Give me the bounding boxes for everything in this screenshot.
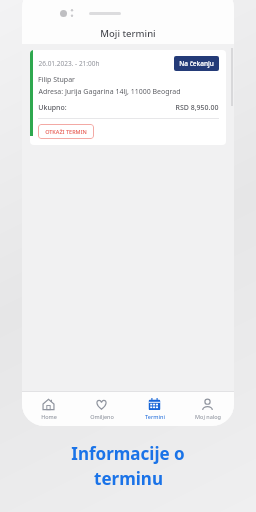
button[interactable]: Na čekanju [174, 56, 219, 71]
button[interactable]: 26.01.2023. - 21:00h [30, 50, 226, 145]
button[interactable]: Termini [128, 392, 181, 426]
button[interactable]: Moj nalog [181, 392, 234, 426]
button[interactable]: OTKAŽI TERMIN [38, 124, 94, 139]
staticText: 26.01.2023. - 21:00h [38, 59, 100, 68]
button[interactable]: Omiljeno [75, 392, 128, 426]
staticText: Filip Stupar [38, 75, 75, 85]
staticText: Informacije o [71, 442, 185, 465]
staticText: Adresa: Jurija Gagarina 14lj, 11000 Beog… [38, 87, 181, 97]
staticText: Moji termini [100, 27, 156, 40]
staticText: Na čekanju [179, 59, 214, 68]
staticText: RSD 8,950.00 [175, 103, 219, 113]
button[interactable]: Home [22, 392, 75, 426]
staticText: Termini [145, 413, 165, 420]
staticText: Omiljeno [90, 413, 114, 420]
staticText: OTKAŽI TERMIN [45, 128, 87, 135]
staticText: Home [41, 413, 57, 420]
staticText: Moj nalog [195, 413, 221, 420]
staticText: Ukupno: [38, 103, 67, 113]
staticText: terminu [94, 467, 163, 490]
